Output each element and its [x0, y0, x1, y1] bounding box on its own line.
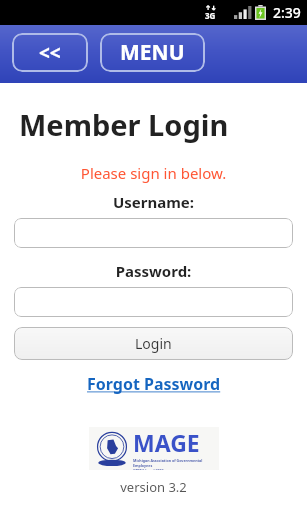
staticText: <<: [39, 40, 61, 66]
staticText: Password:: [0, 261, 307, 281]
staticText: version 3.2: [0, 478, 307, 496]
staticText: Please sign in below.: [0, 163, 307, 183]
staticText: 2:39: [273, 3, 301, 22]
staticText: OPEIU Local 2002: [133, 468, 164, 470]
staticText: Member Login: [19, 105, 229, 144]
button[interactable]: MENU: [100, 33, 205, 72]
staticText: Login: [135, 334, 172, 353]
button[interactable]: Login: [14, 327, 293, 360]
staticText: 3G: [205, 10, 216, 21]
staticText: Michigan Association of Governmental Emp…: [133, 458, 219, 468]
button[interactable]: Text field: [14, 218, 293, 248]
staticText: MAGE: [133, 427, 200, 458]
button[interactable]: Forgot Password: [81, 371, 227, 397]
button[interactable]: Text field: [14, 287, 293, 317]
button[interactable]: Back: [12, 33, 88, 72]
staticText: Forgot Password: [87, 373, 221, 395]
staticText: MENU: [120, 38, 185, 67]
staticText: Username:: [0, 192, 307, 212]
